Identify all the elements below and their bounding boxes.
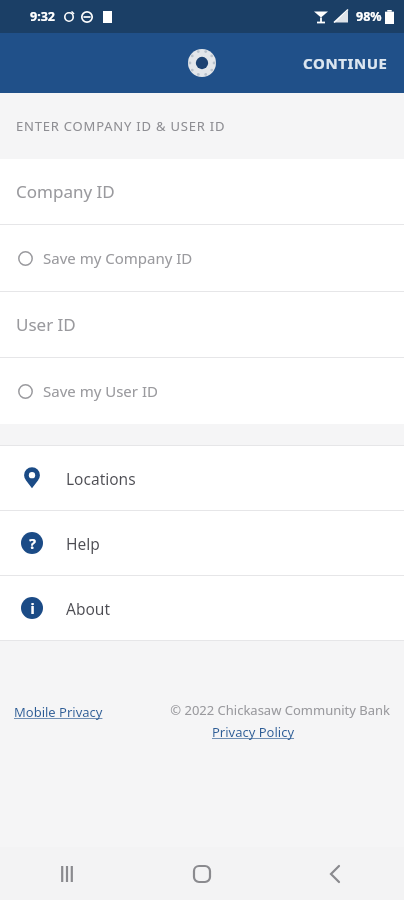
staticText: 9:32	[30, 8, 55, 25]
staticText: ?	[29, 534, 36, 553]
button[interactable]: Save my User ID	[0, 358, 404, 424]
button[interactable]: Company ID	[0, 159, 404, 224]
button[interactable]: Home	[134, 847, 269, 900]
button[interactable]: Back	[269, 847, 404, 900]
staticText: 98%	[356, 8, 382, 25]
staticText: Save my User ID	[43, 381, 158, 401]
staticText: CONTINUE	[303, 53, 388, 73]
staticText: Save my Company ID	[43, 248, 193, 268]
button[interactable]: Locations	[0, 446, 404, 510]
staticText: © 2022 Chickasaw Community Bank	[170, 701, 390, 719]
other: App logo	[188, 49, 216, 77]
button[interactable]: CONTINUE	[287, 39, 404, 87]
staticText: Privacy Policy	[212, 723, 295, 741]
staticText: Mobile Privacy	[14, 703, 103, 721]
button[interactable]: User ID	[0, 292, 404, 357]
staticText: User ID	[16, 313, 76, 336]
button[interactable]: Save my Company ID	[0, 225, 404, 291]
staticText: Help	[66, 533, 100, 554]
button[interactable]: i	[0, 576, 404, 640]
staticText: Company ID	[16, 180, 115, 203]
staticText: ENTER COMPANY ID & USER ID	[16, 117, 226, 135]
button[interactable]: Recent apps	[0, 847, 134, 900]
button[interactable]: Privacy Policy	[212, 723, 295, 741]
staticText: i	[30, 599, 35, 618]
button[interactable]: Mobile Privacy	[14, 701, 103, 723]
staticText: Locations	[66, 468, 136, 489]
button[interactable]: ?	[0, 511, 404, 575]
staticText: About	[66, 598, 110, 619]
